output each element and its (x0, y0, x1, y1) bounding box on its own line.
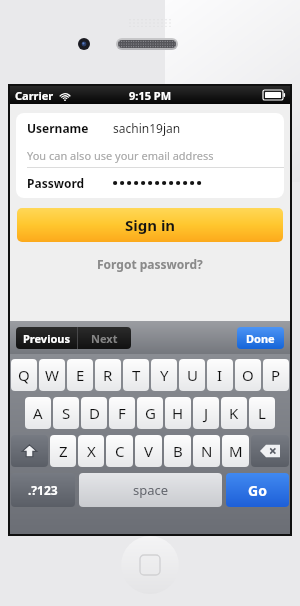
staticText: D (89, 403, 100, 423)
button[interactable]: G (137, 397, 163, 429)
staticText: space (133, 481, 169, 499)
staticText: Go (248, 481, 267, 500)
staticText: L (258, 403, 266, 423)
staticText: Z (59, 441, 68, 461)
button[interactable]: D (81, 397, 107, 429)
staticText: O (242, 365, 254, 385)
staticText: T (132, 365, 141, 385)
button[interactable]: I (207, 359, 233, 391)
button[interactable]: .?123 (11, 473, 75, 507)
button[interactable]: space (79, 473, 222, 507)
button[interactable]: V (135, 435, 162, 467)
button[interactable]: O (235, 359, 261, 391)
staticText: You can also use your email address (27, 148, 214, 163)
button[interactable]: Sign in (17, 208, 283, 242)
button[interactable]: Previous (16, 327, 77, 349)
staticText: Previous (23, 331, 70, 346)
button[interactable]: S (53, 397, 79, 429)
button[interactable]: N (193, 435, 220, 467)
staticText: Q (18, 365, 30, 385)
button[interactable]: U (179, 359, 205, 391)
staticText: A (33, 403, 43, 423)
staticText: Forgot password? (97, 256, 203, 272)
staticText: E (76, 365, 85, 385)
staticText: U (187, 365, 198, 385)
button[interactable]: Q (11, 359, 37, 391)
staticText: sachin19jan (113, 120, 181, 136)
button[interactable]: Y (151, 359, 177, 391)
button[interactable]: B (164, 435, 191, 467)
button[interactable]: A (25, 397, 51, 429)
staticText: I (217, 365, 223, 385)
staticText: Done (246, 331, 275, 346)
staticText: .?123 (28, 482, 58, 498)
staticText: Carrier (15, 88, 54, 103)
button[interactable]: K (221, 397, 247, 429)
button[interactable]: H (165, 397, 191, 429)
button[interactable]: F (109, 397, 135, 429)
staticText: G (145, 403, 156, 423)
button[interactable]: M (222, 435, 249, 467)
staticText: Y (160, 365, 169, 385)
staticText: M (229, 441, 243, 461)
button[interactable]: P (263, 359, 289, 391)
staticText: V (144, 441, 154, 461)
button[interactable]: E (67, 359, 93, 391)
staticText: Next (91, 331, 118, 346)
button[interactable]: Backspace (251, 435, 289, 467)
button[interactable]: Next (78, 327, 131, 349)
staticText: W (45, 365, 59, 385)
button[interactable]: Username (16, 113, 284, 143)
button[interactable]: C (106, 435, 133, 467)
button[interactable]: J (193, 397, 219, 429)
button[interactable]: R (95, 359, 121, 391)
staticText: R (103, 365, 113, 385)
staticText: C (115, 441, 125, 461)
staticText: X (87, 441, 96, 461)
button[interactable]: W (39, 359, 65, 391)
staticText: S (62, 403, 71, 423)
button[interactable]: T (123, 359, 149, 391)
staticText: P (271, 365, 281, 385)
button[interactable]: Go (226, 473, 289, 507)
staticText: Password (27, 175, 85, 191)
staticText: H (172, 403, 184, 423)
staticText: 9:15 PM (129, 88, 172, 103)
staticText: K (229, 403, 239, 423)
button[interactable]: L (249, 397, 275, 429)
button[interactable]: Forgot password? (93, 252, 207, 276)
button[interactable]: Password (16, 168, 284, 198)
button[interactable]: Shift (11, 435, 48, 467)
staticText: N (201, 441, 213, 461)
button[interactable]: Home (121, 536, 179, 594)
staticText: B (173, 441, 183, 461)
staticText: Username (27, 120, 89, 136)
button[interactable]: Z (50, 435, 76, 467)
staticText: J (204, 403, 209, 423)
staticText: F (118, 403, 126, 423)
button[interactable]: Done (237, 327, 284, 349)
button[interactable]: X (78, 435, 104, 467)
staticText: Sign in (125, 215, 176, 235)
